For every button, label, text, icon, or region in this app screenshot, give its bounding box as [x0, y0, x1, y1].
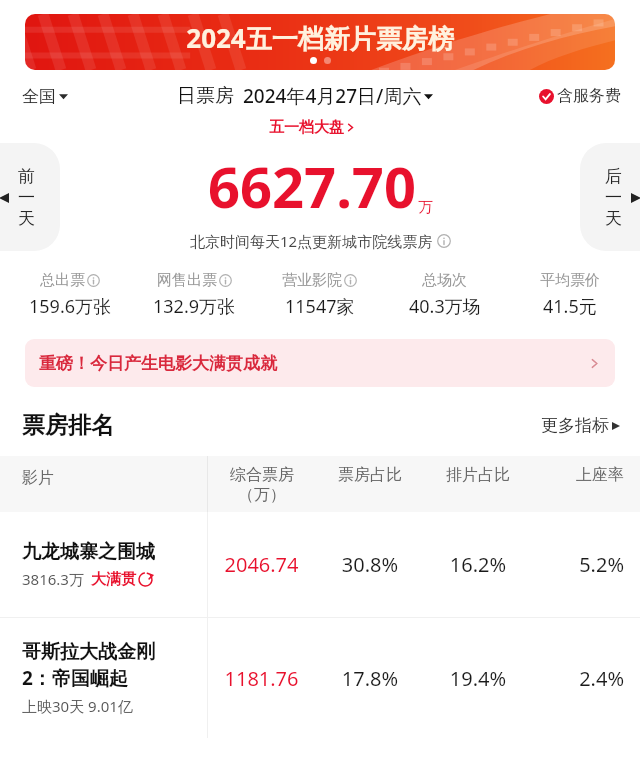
staticText: 2.4% [532, 665, 624, 692]
staticText: 17.8% [316, 665, 424, 692]
staticText: 更多指标 [541, 415, 609, 436]
staticText: 3816.3万 [22, 569, 84, 589]
staticText: 营业影院 [282, 271, 342, 290]
staticText: 一 [18, 187, 35, 208]
staticText: 上座率 [532, 465, 624, 485]
staticText: 票房排名 [22, 411, 114, 440]
staticText: 5.2% [532, 551, 624, 578]
staticText: 北京时间每天12点更新城市院线票房 [190, 231, 433, 251]
staticText: 总场次 [422, 271, 467, 290]
staticText: 大满贯 [91, 570, 136, 589]
staticText: 排片占比 [424, 465, 532, 485]
staticText: 天 [18, 208, 35, 229]
staticText: 票房占比 [316, 465, 424, 485]
staticText: 万 [418, 198, 433, 217]
button[interactable]: 更多指标 [537, 411, 624, 440]
staticText: 2024年4月27日/周六 [243, 83, 422, 109]
staticText: 上映30天 9.01亿 [22, 696, 133, 716]
button[interactable]: 2024五一档新片票房榜 [25, 14, 615, 70]
button[interactable]: 哥斯拉大战金刚 2：帝国崛起 [0, 618, 640, 738]
staticText: 天 [605, 208, 622, 229]
staticText: 6627.70 [208, 148, 416, 224]
staticText: 19.4% [424, 665, 532, 692]
staticText: 总出票 [40, 271, 85, 290]
staticText: 平均票价 [540, 271, 600, 290]
button[interactable]: 五一档大盘 [265, 116, 360, 139]
button[interactable]: 前 [0, 143, 60, 251]
staticText: 前 [18, 166, 35, 187]
staticText: 综合票房 [230, 465, 294, 485]
button[interactable]: 全国 [18, 82, 72, 111]
staticText: 16.2% [424, 551, 532, 578]
staticText: 159.6万张 [29, 294, 112, 319]
button[interactable]: 含服务费 [536, 83, 624, 109]
staticText: 2024五一档新片票房榜 [25, 20, 615, 56]
staticText: （万） [238, 485, 286, 505]
staticText: 1181.76 [207, 665, 316, 692]
button[interactable]: 日票房 [174, 80, 436, 112]
button[interactable]: 九龙城寨之围城 [0, 512, 640, 617]
staticText: 网售出票 [157, 271, 217, 290]
staticText: 2046.74 [207, 551, 316, 578]
staticText: 含服务费 [557, 86, 621, 106]
staticText: 132.9万张 [153, 294, 236, 319]
staticText: 影片 [22, 468, 54, 488]
staticText: 九龙城寨之围城 [22, 540, 155, 564]
staticText: 日票房 [177, 84, 234, 108]
staticText: 五一档大盘 [269, 118, 344, 137]
staticText: 哥斯拉大战金刚 2：帝国崛起 [22, 640, 155, 691]
staticText: 重磅！今日产生电影大满贯成就 [39, 353, 277, 374]
button[interactable]: 后 [580, 143, 640, 251]
staticText: 11547家 [285, 294, 355, 319]
staticText: 全国 [22, 86, 56, 107]
staticText: 41.5元 [543, 294, 597, 319]
staticText: 40.3万场 [409, 294, 481, 319]
staticText: 一 [605, 187, 622, 208]
button[interactable]: 重磅！今日产生电影大满贯成就 [25, 339, 615, 387]
staticText: 后 [605, 166, 622, 187]
staticText: 30.8% [316, 551, 424, 578]
